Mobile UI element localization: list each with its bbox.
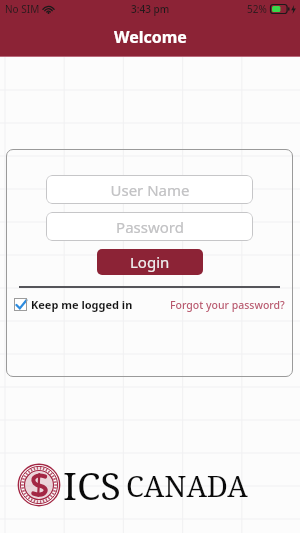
staticText: ICS xyxy=(63,459,121,511)
staticText: User Name xyxy=(110,180,190,200)
staticText: Forgot your password? xyxy=(170,298,285,312)
button[interactable]: Login xyxy=(97,249,203,275)
staticText: 3:43 pm xyxy=(131,2,170,16)
staticText: Password xyxy=(116,217,184,237)
button[interactable]: Forgot your password? xyxy=(170,298,285,312)
staticText: Keep me logged in xyxy=(31,297,133,312)
button[interactable]: User Name xyxy=(46,175,253,204)
staticText: CANADA xyxy=(126,466,248,505)
staticText: No SIM xyxy=(5,2,40,16)
button[interactable]: Password xyxy=(46,212,253,241)
button[interactable]: Keep me logged in xyxy=(14,297,133,312)
staticText: Welcome xyxy=(114,26,187,48)
staticText: 52% xyxy=(247,2,267,16)
staticText: Login xyxy=(130,252,170,272)
